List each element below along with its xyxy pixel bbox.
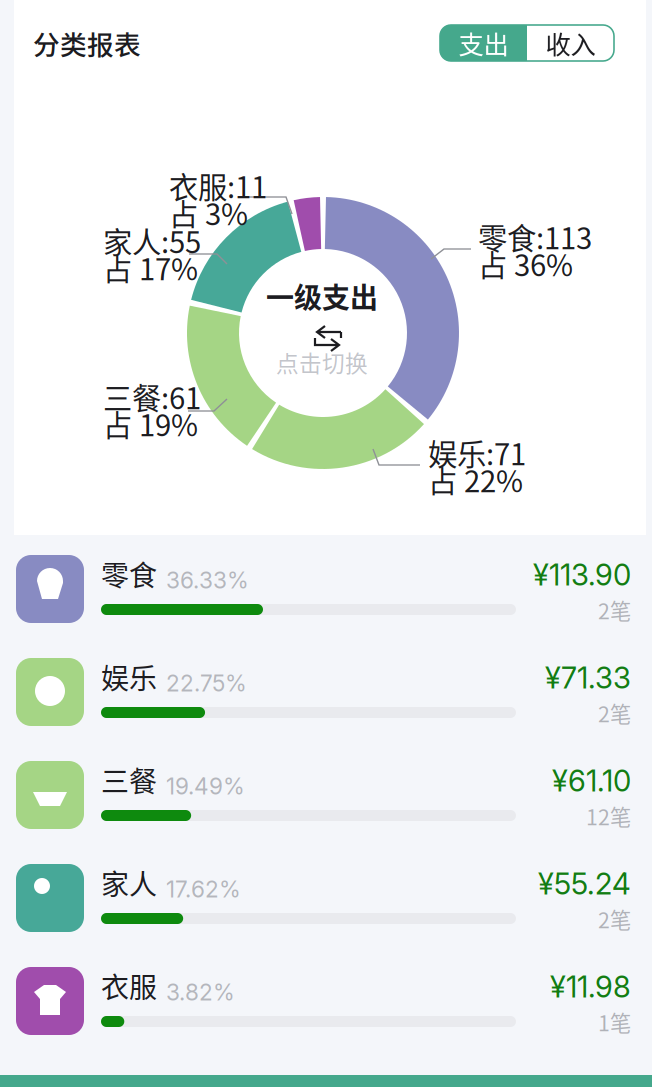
staticText: 三餐 <box>101 759 157 800</box>
staticText: 占 17% <box>103 246 198 289</box>
staticText: 零食:113 <box>478 215 592 258</box>
staticText: 一级支出 <box>266 276 378 316</box>
staticText: 19.49% <box>166 773 245 800</box>
staticText: 3.82% <box>166 979 235 1006</box>
staticText: 2笔 <box>598 903 631 934</box>
staticText: 分类报表 <box>33 24 141 62</box>
staticText: 衣服:11 <box>169 164 267 207</box>
staticText: 占 19% <box>103 402 198 445</box>
button[interactable]: 娱乐 <box>0 641 652 744</box>
button[interactable]: 收入 <box>527 25 614 61</box>
staticText: 36.33% <box>166 567 249 594</box>
staticText: 17.62% <box>166 876 241 903</box>
staticText: 占 3% <box>169 191 248 234</box>
staticText: 家人 <box>101 862 157 903</box>
staticText: 零食 <box>101 553 157 594</box>
staticText: 22.75% <box>166 670 247 697</box>
staticText: 家人:55 <box>103 219 201 262</box>
button[interactable]: 衣服 <box>0 950 652 1053</box>
staticText: 1笔 <box>598 1006 631 1037</box>
staticText: 2笔 <box>598 594 631 625</box>
staticText: 2笔 <box>598 697 631 728</box>
button[interactable]: 零食 <box>0 538 652 641</box>
staticText: 三餐:61 <box>103 375 201 418</box>
staticText: 12笔 <box>586 800 631 831</box>
staticText: ¥61.10 <box>552 763 631 798</box>
staticText: 占 22% <box>428 458 523 501</box>
button[interactable]: 支出 <box>440 25 527 61</box>
staticText: 娱乐 <box>101 656 157 697</box>
staticText: 支出 <box>458 25 508 61</box>
staticText: ¥71.33 <box>545 660 631 695</box>
staticText: ¥55.24 <box>538 866 631 901</box>
button[interactable]: 三餐 <box>0 744 652 847</box>
staticText: 娱乐:71 <box>428 431 526 474</box>
staticText: ¥113.90 <box>533 557 631 592</box>
staticText: ¥11.98 <box>550 969 631 1004</box>
staticText: 占 36% <box>478 242 573 285</box>
staticText: 点击切换 <box>276 346 368 378</box>
staticText: 衣服 <box>101 965 157 1006</box>
staticText: 收入 <box>545 25 595 61</box>
button[interactable]: 家人 <box>0 847 652 950</box>
